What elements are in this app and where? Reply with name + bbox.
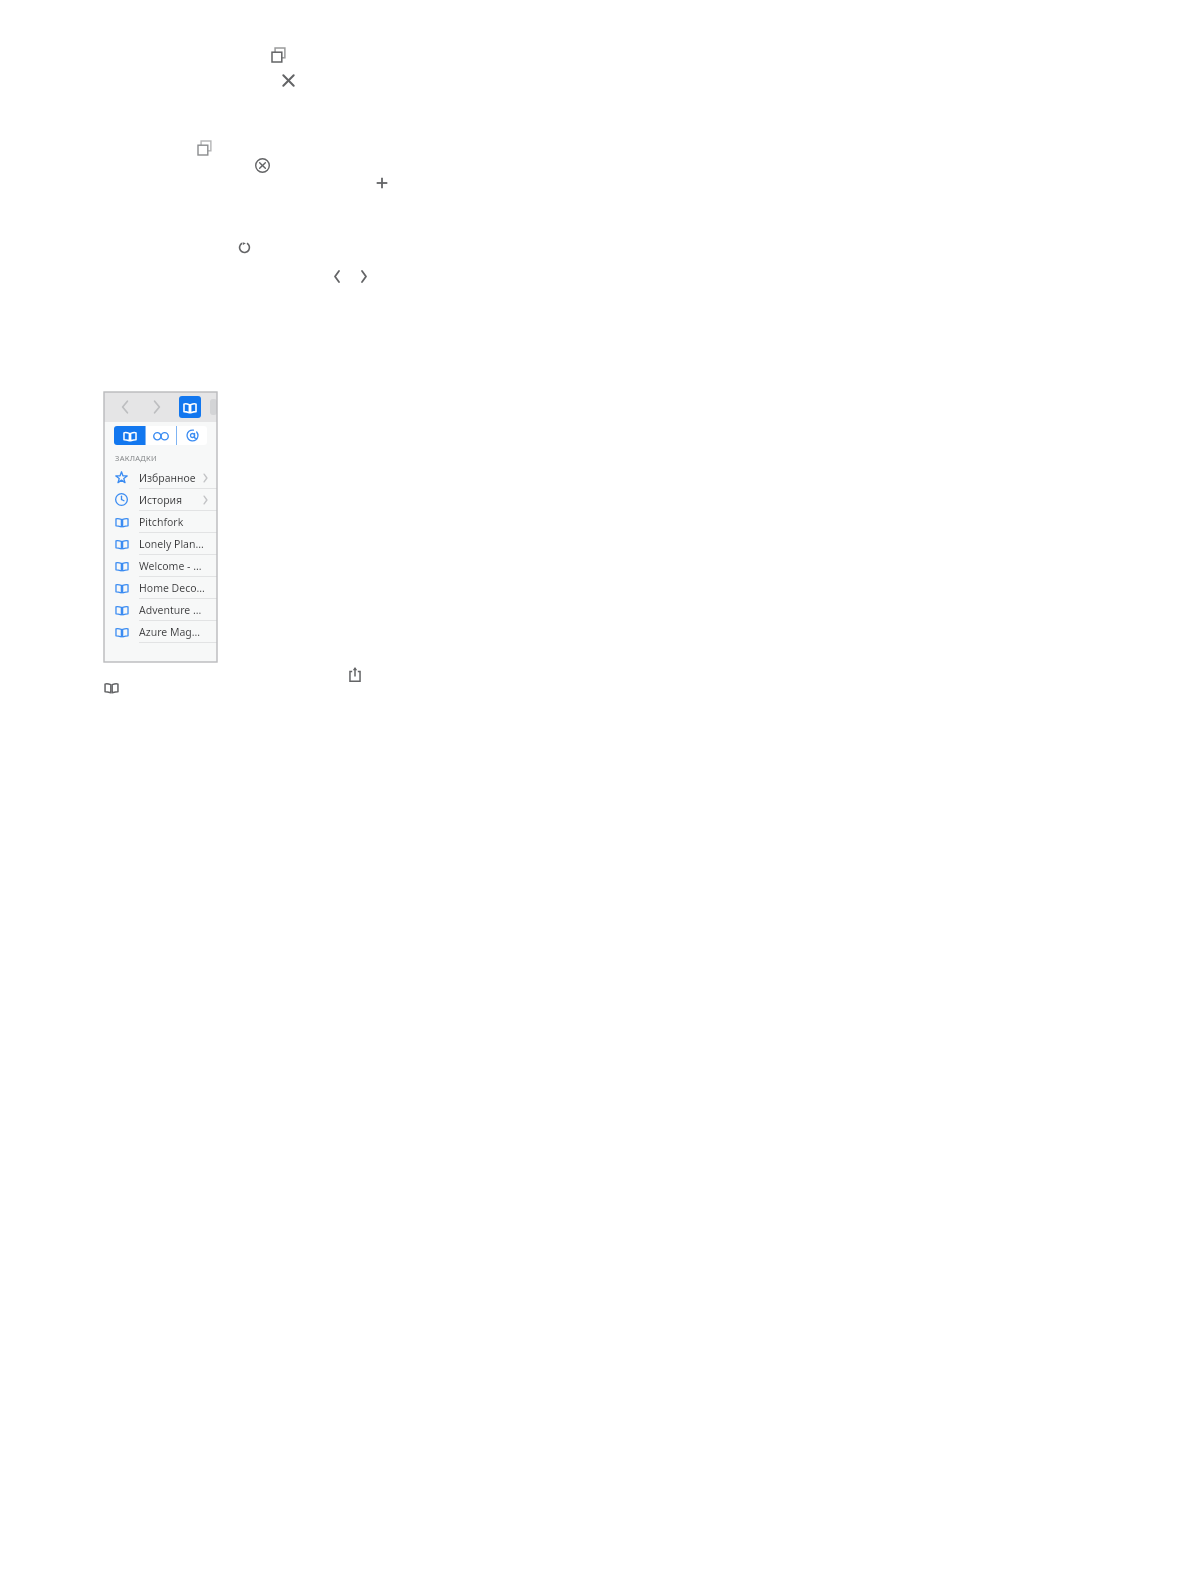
staticText: Azure Magazine - Design | Arc… <box>139 625 205 639</box>
staticText: Home Decor - Home Decorati… <box>139 581 205 595</box>
button[interactable]: Избранное <box>104 467 217 489</box>
staticText: Избранное <box>139 471 198 485</box>
staticText: ЗАКЛАДКИ <box>115 453 158 463</box>
staticText: Welcome - The Bold Italic - Sa… <box>139 559 205 573</box>
button[interactable]: Lonely Planet <box>104 533 217 555</box>
button[interactable]: Tabs <box>272 48 286 62</box>
button[interactable]: Share <box>348 666 362 682</box>
button[interactable]: Welcome - The Bold Italic - Sa… <box>104 555 217 577</box>
button[interactable]: Back <box>119 398 131 416</box>
staticText: Adventure Travel, Gear, and Fi… <box>139 603 205 617</box>
button[interactable]: Home Decor - Home Decorati… <box>104 577 217 599</box>
button[interactable]: New tab <box>375 176 389 190</box>
button[interactable]: Back <box>332 268 342 285</box>
button[interactable]: Reload <box>237 240 252 255</box>
button[interactable]: Bookmarks <box>179 396 201 418</box>
button[interactable]: Reading list tab <box>146 426 176 445</box>
staticText: Lonely Planet <box>139 537 205 551</box>
button[interactable] <box>210 399 217 415</box>
staticText: История <box>139 493 198 507</box>
button[interactable]: Bookmarks <box>104 681 119 694</box>
button[interactable]: Close tab <box>255 158 270 173</box>
button[interactable]: Forward <box>359 268 369 285</box>
button[interactable]: Bookmarks tab <box>114 426 145 445</box>
button[interactable]: Adventure Travel, Gear, and Fi… <box>104 599 217 621</box>
button[interactable]: Tabs <box>198 141 212 155</box>
button[interactable]: Pitchfork <box>104 511 217 533</box>
button[interactable]: Forward <box>151 398 163 416</box>
button[interactable]: Close <box>282 74 295 87</box>
button[interactable]: Shared links tab <box>177 426 207 445</box>
button[interactable]: История <box>104 489 217 511</box>
button[interactable]: Azure Magazine - Design | Arc… <box>104 621 217 643</box>
staticText: Pitchfork <box>139 515 205 529</box>
